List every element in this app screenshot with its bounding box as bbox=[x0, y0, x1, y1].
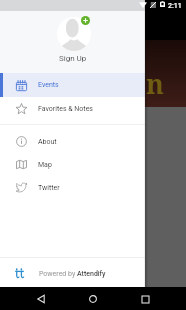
staticText: About bbox=[38, 138, 57, 146]
staticText: 2:11 bbox=[168, 2, 182, 10]
staticText: Powered by bbox=[39, 270, 77, 278]
button[interactable]: Twitter bbox=[0, 176, 145, 199]
button[interactable]: Home bbox=[82, 288, 104, 310]
staticText: Favorites & Notes bbox=[38, 105, 93, 113]
staticText: n bbox=[146, 65, 165, 102]
button[interactable]: About bbox=[0, 130, 145, 153]
button[interactable]: Sign up bbox=[81, 16, 90, 25]
button[interactable]: Powered by bbox=[0, 258, 145, 287]
button[interactable]: Map bbox=[0, 153, 145, 176]
staticText: Map bbox=[38, 161, 52, 169]
button[interactable]: Recent apps bbox=[134, 288, 156, 310]
staticText: Attendify bbox=[77, 270, 106, 278]
button[interactable]: Back bbox=[30, 288, 52, 310]
staticText: Sign Up bbox=[59, 54, 87, 63]
staticText: Events bbox=[38, 81, 59, 89]
button[interactable]: Favorites & Notes bbox=[0, 97, 145, 120]
button[interactable]: Events bbox=[0, 73, 145, 97]
staticText: Twitter bbox=[38, 184, 60, 192]
button[interactable]: Profile photo bbox=[57, 17, 91, 51]
